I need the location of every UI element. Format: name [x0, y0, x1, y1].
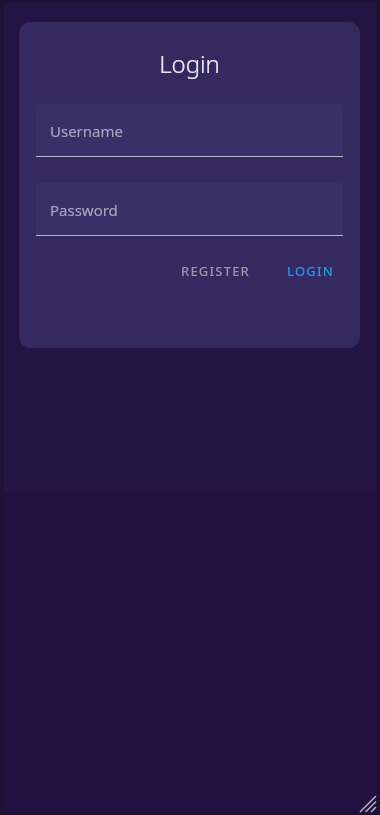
button[interactable]: Password [36, 183, 343, 236]
staticText: REGISTER [181, 262, 251, 280]
button[interactable]: Username [36, 104, 343, 157]
button[interactable]: LOGIN [279, 254, 343, 288]
staticText: Password [50, 200, 118, 220]
button[interactable]: REGISTER [173, 254, 259, 288]
staticText: LOGIN [287, 262, 335, 280]
staticText: Username [50, 121, 123, 141]
staticText: Login [159, 47, 220, 80]
